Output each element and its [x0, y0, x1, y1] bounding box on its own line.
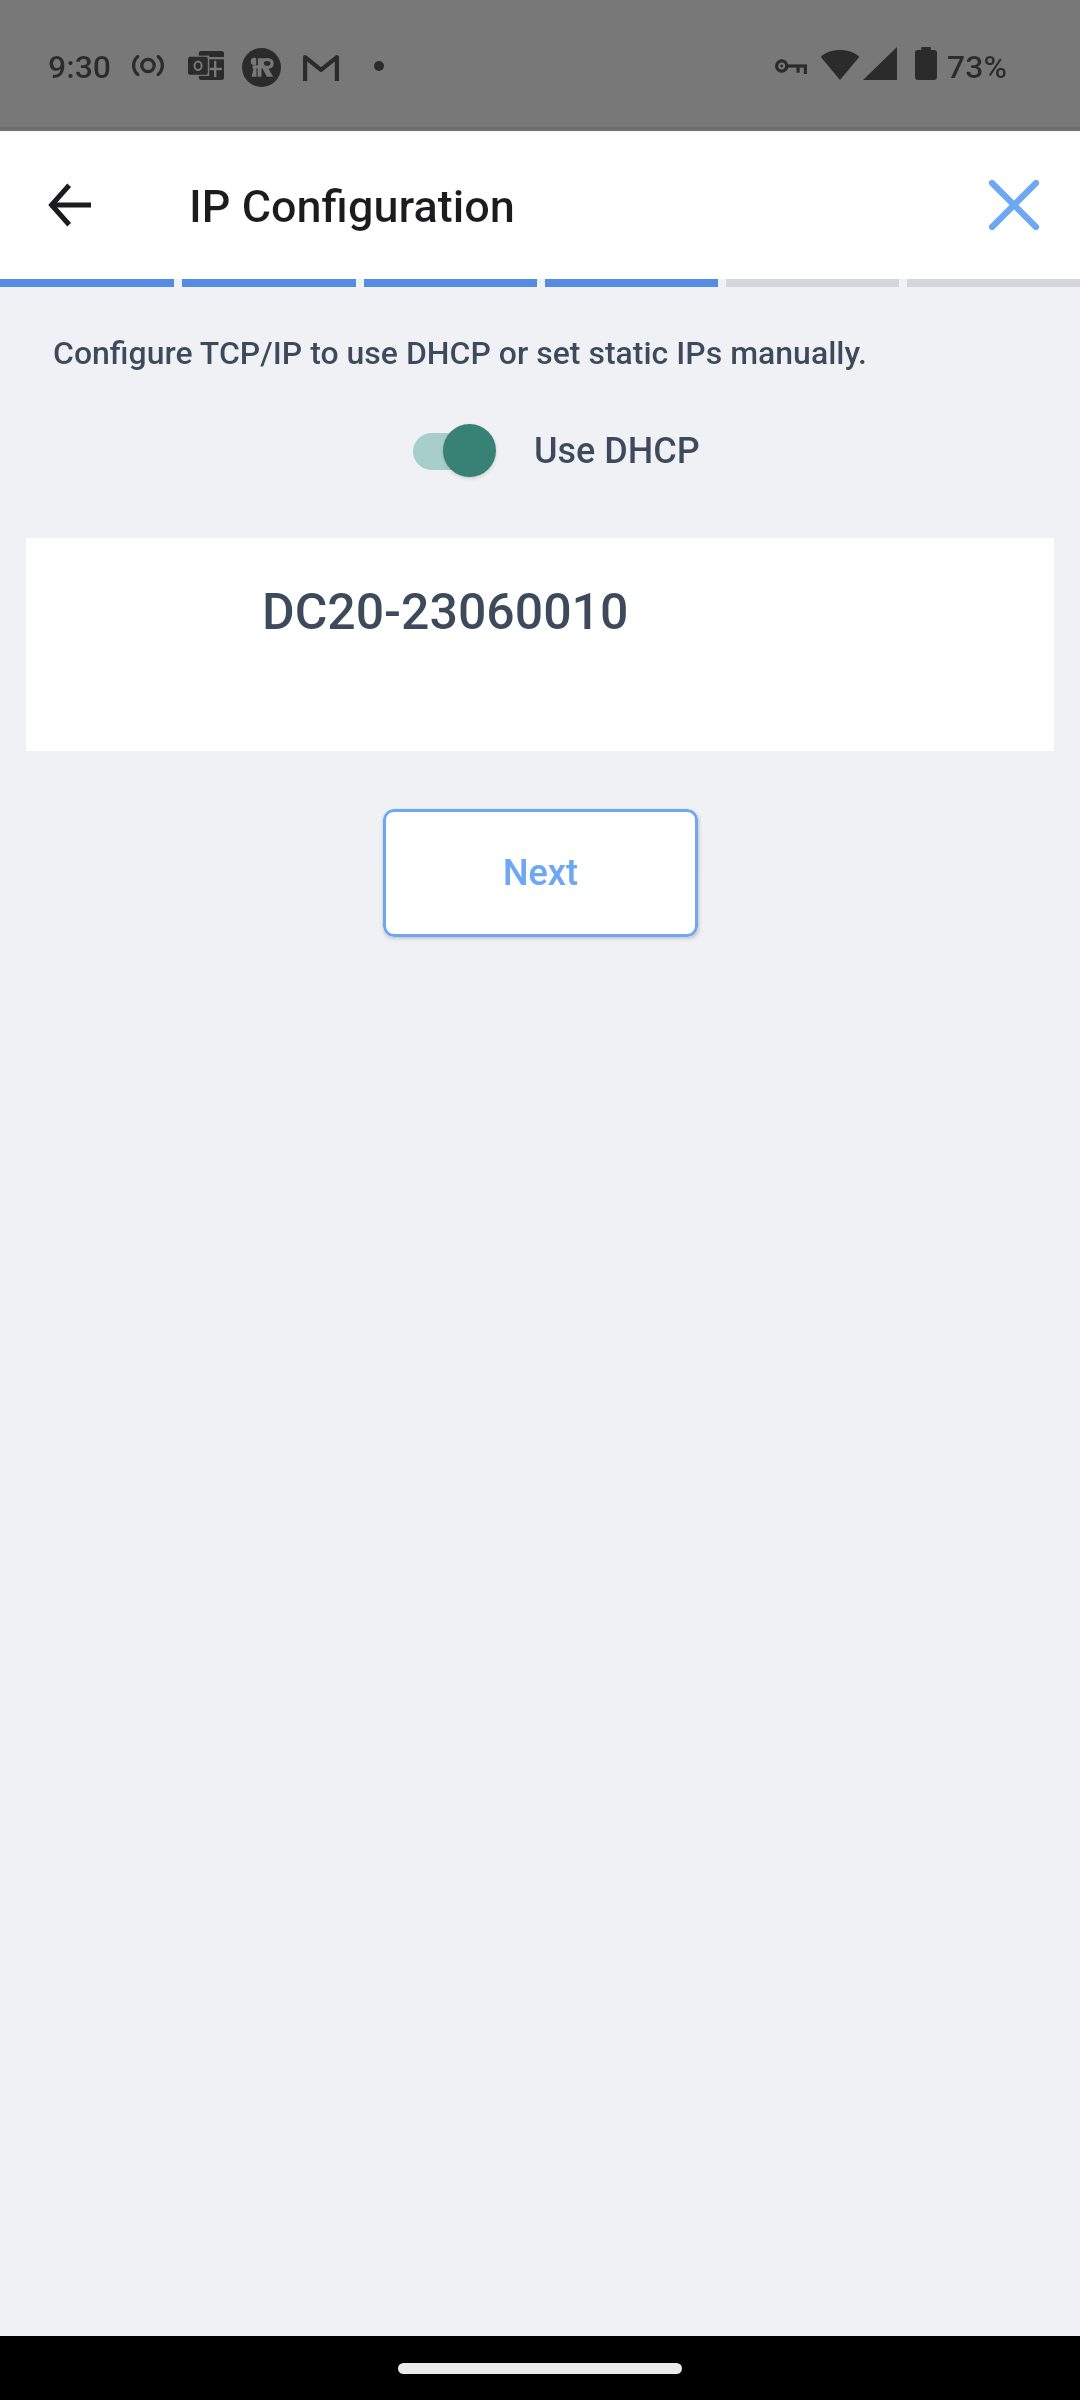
staticText: Next — [503, 852, 578, 894]
staticText: Use DHCP — [534, 430, 700, 472]
button[interactable]: Close — [970, 161, 1058, 249]
button[interactable]: Next — [383, 809, 698, 937]
staticText: DC20-23060010 — [262, 583, 629, 642]
button[interactable]: Use DHCP — [413, 424, 700, 477]
staticText: Configure TCP/IP to use DHCP or set stat… — [53, 334, 868, 372]
staticText: 73% — [947, 48, 1007, 86]
staticText: 9:30 — [48, 48, 111, 86]
button[interactable]: Back — [26, 161, 114, 249]
button[interactable]: DC20-23060010 — [26, 538, 1054, 751]
staticText: IP Configuration — [189, 180, 515, 233]
